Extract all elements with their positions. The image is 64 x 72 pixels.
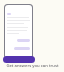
button[interactable] [3,56,35,63]
staticText: Get answers you can trust [6,63,59,69]
